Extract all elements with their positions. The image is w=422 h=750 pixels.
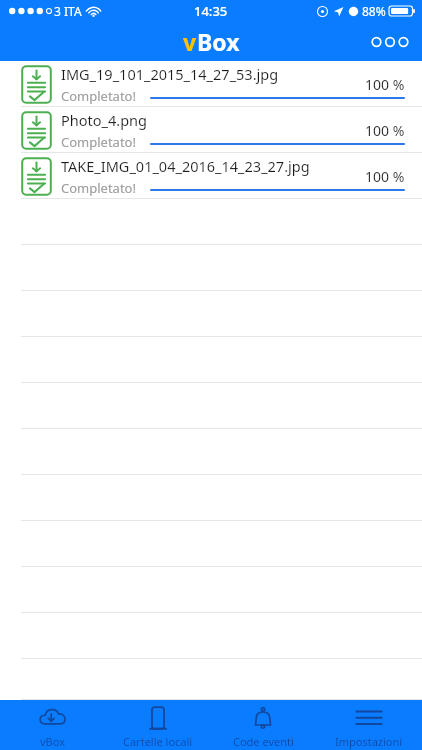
staticText: 100 %	[365, 167, 405, 186]
staticText: 100 %	[365, 75, 405, 94]
staticText: IMG_19_101_2015_14_27_53.jpg	[61, 64, 279, 84]
button[interactable]: Photo_4.png	[0, 107, 422, 153]
staticText: TAKE_IMG_01_04_2016_14_23_27.jpg	[61, 156, 310, 176]
staticText: Completato!	[61, 87, 136, 105]
button[interactable]: Impostazioni	[316, 700, 422, 750]
button[interactable]: Code eventi	[210, 700, 316, 750]
staticText: Box	[197, 26, 240, 57]
staticText: Completato!	[61, 133, 136, 151]
staticText: v	[183, 26, 197, 57]
staticText: Impostazioni	[335, 734, 403, 749]
staticText: Cartelle locali	[123, 734, 193, 749]
staticText: Completato!	[61, 179, 136, 197]
staticText: Photo_4.png	[61, 110, 147, 130]
staticText: 14:35	[194, 2, 228, 20]
staticText: vBox	[40, 734, 65, 749]
staticText: 3 ITA	[54, 3, 82, 19]
staticText: 88%	[362, 3, 386, 19]
staticText: 100 %	[365, 121, 405, 140]
button[interactable]: IMG_19_101_2015_14_27_53.jpg	[0, 61, 422, 107]
staticText: Code eventi	[233, 734, 294, 749]
button[interactable]: More options	[366, 22, 414, 61]
button[interactable]: TAKE_IMG_01_04_2016_14_23_27.jpg	[0, 153, 422, 199]
button[interactable]: Cartelle locali	[105, 700, 210, 750]
button[interactable]: vBox	[0, 700, 105, 750]
